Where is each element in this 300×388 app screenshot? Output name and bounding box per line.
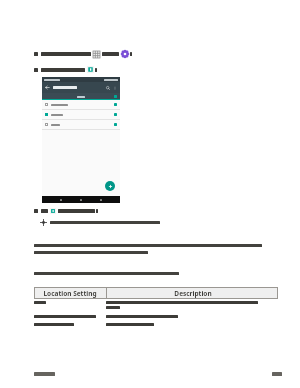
button[interactable] [0, 50, 300, 58]
button[interactable]: Search [106, 86, 110, 90]
button[interactable] [42, 100, 120, 109]
button[interactable] [0, 208, 300, 214]
button[interactable] [34, 313, 278, 321]
button[interactable]: Back [42, 82, 120, 93]
button[interactable]: More options [113, 86, 117, 90]
staticText: Location Setting [43, 289, 97, 298]
staticText: Description [174, 289, 212, 298]
button[interactable] [34, 299, 278, 313]
button[interactable]: Add [105, 181, 115, 191]
button[interactable] [0, 66, 300, 73]
button[interactable] [34, 321, 278, 329]
button[interactable] [42, 120, 120, 129]
button[interactable] [42, 110, 120, 119]
button[interactable] [42, 93, 120, 100]
button[interactable]: Back [45, 85, 50, 90]
